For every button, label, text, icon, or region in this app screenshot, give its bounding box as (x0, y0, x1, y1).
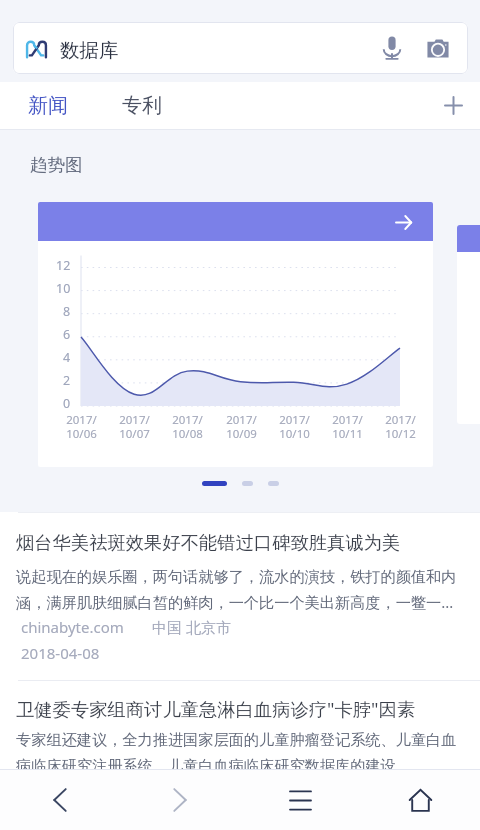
staticText: 2017/ 10/07 (119, 412, 150, 441)
button[interactable]: Home (360, 770, 480, 830)
button[interactable]: Menu (240, 770, 360, 830)
staticText: 2017/ 10/11 (332, 412, 363, 441)
staticText: 新闻 (28, 93, 68, 118)
staticText: 6 (63, 326, 71, 342)
staticText: 2017/ 10/08 (172, 412, 203, 441)
button[interactable]: Add (430, 82, 477, 129)
button[interactable] (268, 481, 279, 486)
button[interactable]: Open chart (38, 202, 433, 467)
button[interactable] (202, 481, 227, 486)
button[interactable]: Forward (120, 770, 240, 830)
staticText: 10 (56, 280, 71, 296)
button[interactable]: 卫健委专家组商讨儿童急淋白血病诊疗"卡脖"因素 (0, 681, 480, 793)
staticText: 4 (63, 349, 71, 365)
staticText: 2017/ 10/09 (226, 412, 257, 441)
staticText: 2 (63, 372, 71, 388)
button[interactable] (242, 481, 253, 486)
staticText: 2017/ 10/12 (385, 412, 416, 441)
button[interactable]: Back (0, 770, 120, 830)
staticText: 2017/ 10/10 (279, 412, 310, 441)
staticText: 说起现在的娱乐圈，两句话就够了，流水的演技，铁打的颜值和内涵，满屏肌肤细腻白皙的… (16, 567, 466, 612)
staticText: 烟台华美祛斑效果好不能错过口碑致胜真诚为美 (16, 531, 401, 554)
staticText: 8 (63, 303, 71, 319)
button[interactable] (457, 225, 480, 424)
staticText: chinabyte.com (21, 617, 124, 637)
button[interactable]: 烟台华美祛斑效果好不能错过口碑致胜真诚为美 (0, 513, 480, 680)
staticText: 数据库 (60, 38, 119, 63)
staticText: 专利 (122, 93, 162, 118)
staticText: 卫健委专家组商讨儿童急淋白血病诊疗"卡脖"因素 (16, 696, 416, 721)
staticText: 2018-04-08 (21, 643, 100, 663)
staticText: 12 (56, 257, 71, 273)
staticText: 2017/ 10/06 (66, 412, 97, 441)
button[interactable]: Open chart (389, 207, 419, 237)
staticText: 趋势图 (30, 154, 83, 176)
button[interactable]: Image search (415, 25, 461, 71)
button[interactable]: 数据库 (13, 22, 468, 74)
staticText: 专家组还建议，全力推进国家层面的儿童肿瘤登记系统、儿童白血病临床研究注册系统、儿… (16, 730, 466, 775)
staticText: 中国 北京市 (152, 617, 231, 637)
button[interactable]: Voice search (369, 25, 415, 71)
staticText: 0 (63, 395, 71, 411)
button[interactable]: 新闻 (0, 82, 95, 129)
button[interactable]: 专利 (95, 82, 189, 129)
